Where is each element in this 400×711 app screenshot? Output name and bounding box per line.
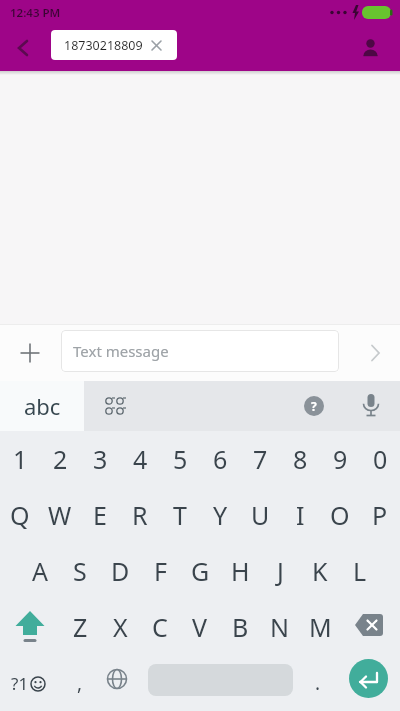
staticText: L (353, 554, 367, 588)
staticText: ?1 (11, 672, 29, 695)
staticText: Text message (73, 341, 169, 361)
staticText: . (315, 670, 321, 696)
staticText: S (73, 554, 87, 588)
staticText: 2 (53, 442, 68, 476)
staticText: F (154, 554, 167, 588)
staticText: 6 (213, 442, 228, 476)
staticText: G (191, 554, 210, 588)
staticText: V (192, 610, 208, 644)
staticText: 3 (93, 442, 108, 476)
staticText: Q (10, 498, 30, 532)
staticText: C (152, 610, 168, 644)
staticText: H (231, 554, 250, 588)
staticText: 0 (373, 442, 388, 476)
staticText: 4 (133, 442, 148, 476)
staticText: Z (73, 610, 88, 644)
staticText: , (77, 670, 83, 696)
staticText: Y (213, 498, 228, 532)
staticText: X (113, 610, 128, 644)
staticText: 8 (293, 442, 308, 476)
staticText: P (372, 498, 388, 532)
staticText: 9 (333, 442, 348, 476)
staticText: K (312, 554, 328, 588)
staticText: 18730218809 (64, 37, 143, 54)
staticText: R (132, 498, 148, 532)
staticText: abc (24, 391, 61, 421)
staticText: W (48, 498, 72, 532)
staticText: E (93, 498, 107, 532)
staticText: ? (311, 398, 317, 414)
staticText: N (270, 610, 290, 644)
staticText: 12:43 PM (10, 5, 61, 21)
staticText: I (296, 498, 305, 532)
staticText: O (330, 498, 350, 532)
staticText: T (173, 498, 187, 532)
staticText: 7 (253, 442, 268, 476)
staticText: M (309, 610, 332, 644)
staticText: U (251, 498, 270, 532)
staticText: B (232, 610, 249, 644)
staticText: A (32, 554, 48, 588)
staticText: 1 (13, 442, 28, 476)
staticText: 5 (173, 442, 188, 476)
staticText: D (111, 554, 130, 588)
staticText: J (277, 554, 284, 588)
